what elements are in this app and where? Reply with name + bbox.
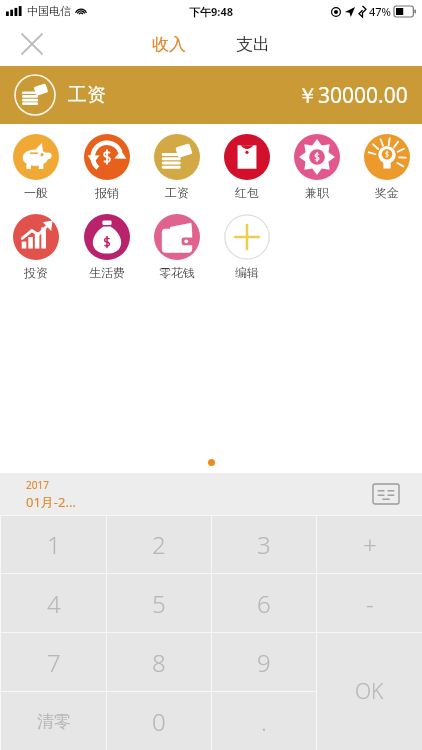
staticText: 报销 (95, 185, 119, 200)
staticText: 4 (47, 587, 61, 620)
staticText: 生活费 (89, 265, 125, 280)
staticText: OK (355, 677, 384, 706)
button[interactable]: 工资 (0, 66, 422, 124)
staticText: 支出 (236, 34, 270, 55)
staticText: 3 (257, 528, 271, 561)
button[interactable]: 6 (212, 574, 316, 632)
staticText: ￥30000.00 (297, 81, 408, 110)
staticText: 中国电信 (27, 4, 71, 18)
staticText: 6 (257, 587, 271, 620)
button[interactable]: 一般 (13, 132, 59, 202)
staticText: 工资 (68, 83, 106, 107)
staticText: 8 (152, 646, 166, 679)
button[interactable]: OK (317, 633, 422, 750)
staticText: 一般 (24, 185, 48, 200)
button[interactable]: 生活费 (84, 212, 130, 282)
button[interactable]: Note (366, 474, 406, 514)
staticText: 2 (152, 528, 166, 561)
staticText: 投资 (24, 265, 48, 280)
staticText: 零花钱 (159, 265, 195, 280)
staticText: 0 (152, 705, 166, 738)
staticText: 工资 (165, 185, 189, 200)
staticText: 9 (257, 646, 271, 679)
button[interactable]: 2 (107, 516, 211, 573)
button[interactable]: 2017 (0, 476, 88, 513)
button[interactable]: 报销 (84, 132, 130, 202)
staticText: . (261, 705, 267, 738)
button[interactable]: 3 (212, 516, 316, 573)
button[interactable]: 支出 (222, 26, 284, 63)
button[interactable]: 清零 (1, 692, 106, 750)
staticText: 47% (369, 4, 391, 19)
staticText: 清零 (37, 711, 71, 732)
button[interactable]: 编辑 (224, 212, 270, 282)
staticText: 红包 (235, 185, 259, 200)
button[interactable]: 工资 (154, 132, 200, 202)
staticText: 编辑 (235, 265, 259, 280)
button[interactable]: 收入 (138, 26, 200, 63)
staticText: - (366, 587, 374, 620)
button[interactable]: 7 (1, 633, 106, 691)
staticText: 5 (152, 587, 166, 620)
button[interactable]: 8 (107, 633, 211, 691)
button[interactable]: 5 (107, 574, 211, 632)
button[interactable]: Close (10, 22, 54, 66)
button[interactable]: 投资 (13, 212, 59, 282)
button[interactable]: 零花钱 (154, 212, 200, 282)
button[interactable]: 0 (107, 692, 211, 750)
staticText: 01月-2... (26, 493, 76, 511)
staticText: 7 (47, 646, 61, 679)
staticText: + (363, 528, 377, 561)
button[interactable]: 兼职 (294, 132, 340, 202)
staticText: 1 (47, 528, 61, 561)
staticText: 下午9:48 (189, 4, 233, 19)
button[interactable]: 9 (212, 633, 316, 691)
staticText: 2017 (26, 478, 49, 492)
button[interactable]: 红包 (224, 132, 270, 202)
button[interactable]: 4 (1, 574, 106, 632)
staticText: 兼职 (305, 185, 329, 200)
staticText: 奖金 (375, 185, 399, 200)
button[interactable]: 奖金 (364, 132, 410, 202)
staticText: 收入 (152, 34, 186, 55)
